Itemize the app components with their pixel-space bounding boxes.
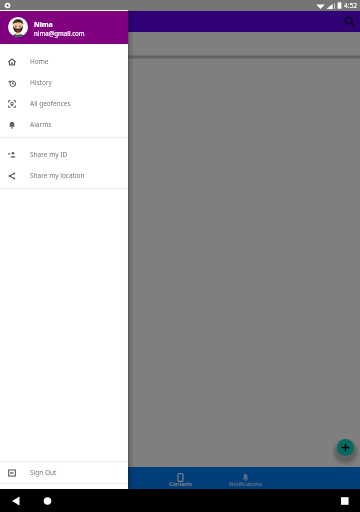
- button[interactable]: Home: [0, 51, 128, 72]
- button[interactable]: Notifications: [210, 467, 280, 489]
- button[interactable]: History: [0, 72, 128, 93]
- button[interactable]: Share my ID: [0, 144, 128, 165]
- staticText: History: [30, 78, 52, 87]
- staticText: Share my location: [30, 171, 85, 180]
- staticText: Sign Out: [30, 468, 57, 477]
- staticText: Contacts: [169, 480, 192, 487]
- staticText: Alarms: [30, 120, 52, 129]
- staticText: Home: [30, 57, 49, 66]
- button[interactable]: Add: [337, 439, 354, 456]
- button[interactable]: Contacts: [155, 467, 205, 489]
- staticText: 4:52: [344, 1, 357, 10]
- button[interactable]: Share my location: [0, 165, 128, 186]
- staticText: Nima: [34, 20, 53, 30]
- staticText: nima@gmail.com: [34, 29, 85, 37]
- button[interactable]: Sign Out: [0, 462, 128, 483]
- button[interactable]: Search: [343, 15, 356, 28]
- button[interactable]: Alarms: [0, 114, 128, 135]
- button[interactable]: All geofences: [0, 93, 128, 114]
- staticText: All geofences: [30, 99, 71, 108]
- staticText: Notifications: [229, 480, 262, 487]
- staticText: Share my ID: [30, 150, 68, 159]
